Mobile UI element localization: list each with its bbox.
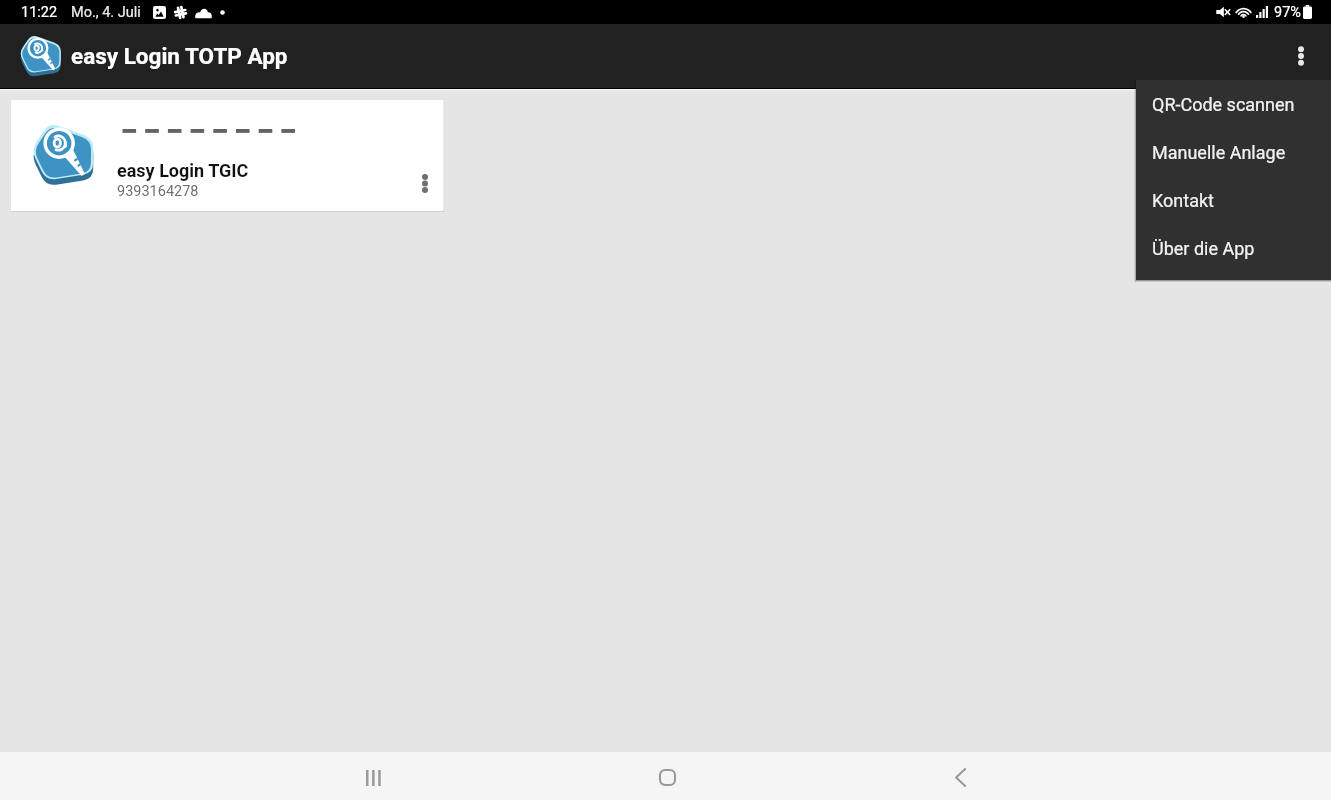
button[interactable]: easy Login TOTP App [0,24,302,88]
staticText: QR-Code scannen [1152,94,1295,115]
button[interactable]: QR-Code scannen [1136,80,1331,128]
staticText: 11:22 [21,4,58,21]
staticText: easy Login TGIC [117,160,249,181]
button[interactable]: Back [940,757,980,797]
button[interactable]: Manuelle Anlage [1136,128,1331,176]
staticText: Kontakt [1152,190,1214,211]
button[interactable]: Über die App [1136,224,1331,272]
staticText: Mo., 4. Juli [71,4,141,21]
button[interactable]: easy Login TGIC [11,100,444,211]
staticText: Manuelle Anlage [1152,142,1286,163]
button[interactable]: Entry options [405,163,445,203]
button[interactable]: Home [647,757,687,797]
staticText: 9393164278 [117,183,199,200]
staticText: Über die App [1152,238,1255,259]
button[interactable]: More options [1279,34,1323,78]
staticText: easy Login TOTP App [71,43,288,69]
staticText: 97% [1274,4,1301,21]
button[interactable]: Recent apps [353,757,394,798]
button[interactable]: Kontakt [1136,176,1331,224]
